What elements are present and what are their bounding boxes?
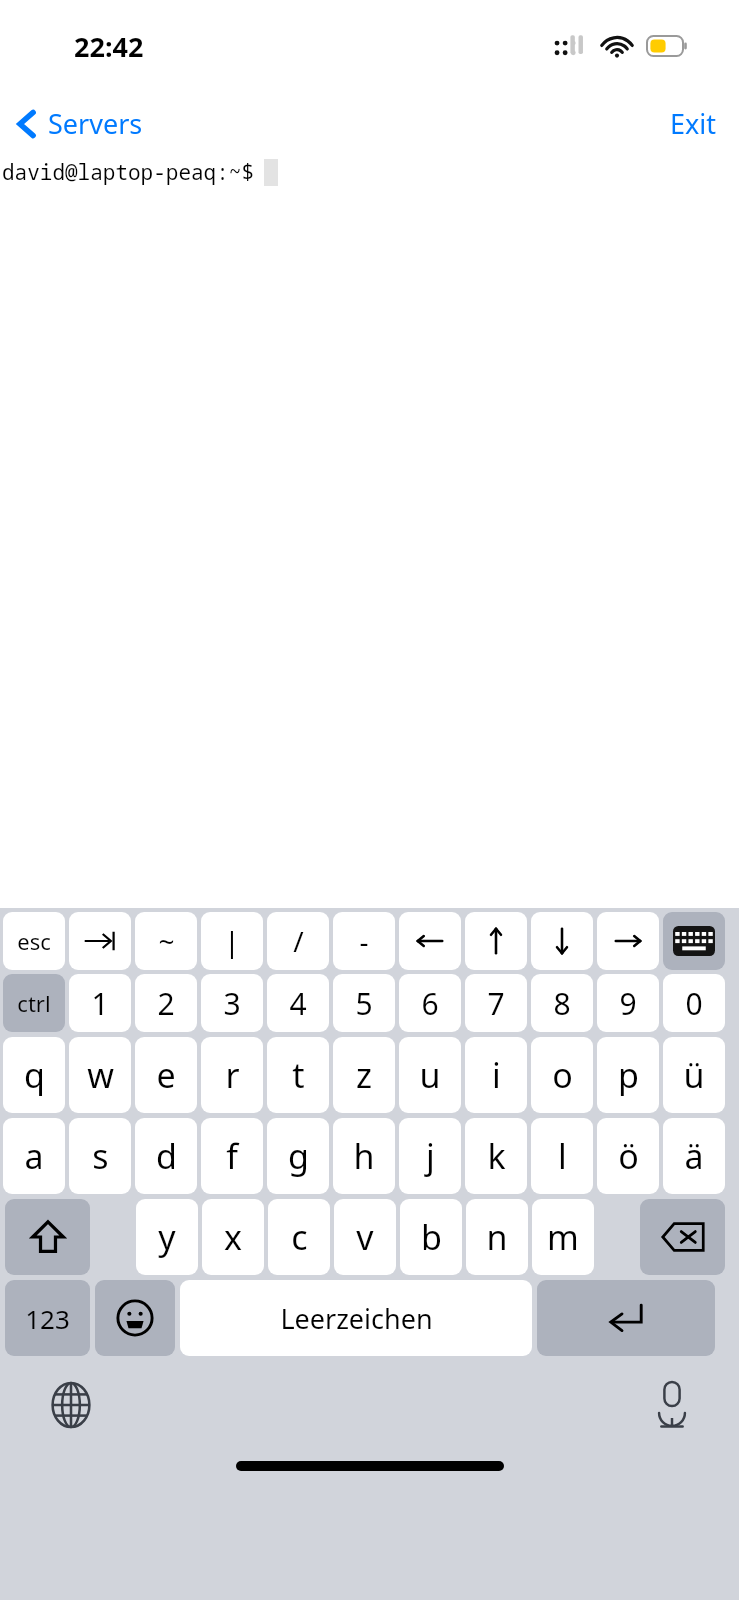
staticText: d [156,1133,177,1179]
button[interactable]: t [267,1037,329,1113]
staticText: ä [684,1133,704,1179]
button[interactable]: 8 [531,974,593,1032]
button[interactable]: esc [3,912,65,970]
button[interactable]: g [267,1118,329,1194]
staticText: z [356,1052,372,1098]
button[interactable]: j [399,1118,461,1194]
staticText: y [158,1214,176,1260]
button[interactable]: u [399,1037,461,1113]
button[interactable]: r [201,1037,263,1113]
button[interactable]: 6 [399,974,461,1032]
button[interactable]: s [69,1118,131,1194]
button[interactable]: m [532,1199,594,1275]
button[interactable]: c [268,1199,330,1275]
staticText: k [487,1133,506,1179]
button[interactable]: o [531,1037,593,1113]
button[interactable]: 3 [201,974,263,1032]
button[interactable]: f [201,1118,263,1194]
button[interactable]: Change keyboard [40,1373,102,1437]
button[interactable]: 2 [135,974,197,1032]
staticText: 2 [157,983,175,1024]
staticText: 5 [355,983,373,1024]
button[interactable]: d [135,1118,197,1194]
button[interactable]: Leerzeichen [180,1280,532,1356]
button[interactable]: Return [537,1280,715,1356]
button[interactable]: ü [663,1037,725,1113]
button[interactable]: ä [663,1118,725,1194]
staticText: / [293,922,304,960]
button[interactable]: Right [597,912,659,970]
staticText: u [419,1052,441,1098]
staticText: 7 [487,983,505,1024]
staticText: | [224,922,240,960]
button[interactable]: k [465,1118,527,1194]
button[interactable]: Tab [69,912,131,970]
staticText: 4 [289,983,307,1024]
button[interactable]: Left [399,912,461,970]
button[interactable]: Exit [648,97,739,150]
staticText: Exit [670,105,717,142]
button[interactable]: e [135,1037,197,1113]
button[interactable]: v [334,1199,396,1275]
button[interactable]: ctrl [3,974,65,1032]
button[interactable]: Dictation [645,1372,699,1438]
button[interactable]: - [333,912,395,970]
staticText: t [292,1052,305,1098]
button[interactable]: / [267,912,329,970]
button[interactable]: Backspace [640,1199,725,1275]
button[interactable]: n [466,1199,528,1275]
button[interactable]: ö [597,1118,659,1194]
button[interactable]: a [3,1118,65,1194]
staticText: esc [17,926,51,956]
button[interactable]: Emoji [95,1280,175,1356]
button[interactable]: h [333,1118,395,1194]
button[interactable]: x [202,1199,264,1275]
button[interactable]: q [3,1037,65,1113]
staticText: j [426,1133,435,1179]
staticText: ~ [158,922,175,960]
button[interactable]: b [400,1199,462,1275]
staticText: q [24,1052,45,1098]
button[interactable]: 7 [465,974,527,1032]
button[interactable]: Up [465,912,527,970]
staticText: n [486,1214,508,1260]
button[interactable]: 0 [663,974,725,1032]
staticText: s [92,1133,109,1179]
staticText: 6 [421,983,439,1024]
button[interactable]: Shift [5,1199,90,1275]
staticText: 9 [619,983,637,1024]
staticText: h [353,1133,375,1179]
button[interactable]: 123 [5,1280,90,1356]
staticText: b [421,1214,442,1260]
staticText: f [226,1133,238,1179]
staticText: 1 [91,983,109,1024]
button[interactable]: | [201,912,263,970]
button[interactable]: i [465,1037,527,1113]
button[interactable]: 5 [333,974,395,1032]
staticText: Servers [48,105,143,142]
button[interactable]: 9 [597,974,659,1032]
button[interactable]: w [69,1037,131,1113]
staticText: e [156,1052,176,1098]
button[interactable]: Down [531,912,593,970]
staticText: l [558,1133,567,1179]
staticText: 8 [553,983,571,1024]
button[interactable]: ~ [135,912,197,970]
button[interactable]: Servers [0,99,155,148]
staticText: p [618,1052,639,1098]
button[interactable]: z [333,1037,395,1113]
staticText: 3 [223,983,241,1024]
button[interactable]: 1 [69,974,131,1032]
staticText: c [291,1214,308,1260]
staticText: 0 [685,983,703,1024]
button[interactable]: Hide keyboard [663,912,725,970]
button[interactable]: p [597,1037,659,1113]
button[interactable]: y [136,1199,198,1275]
staticText: m [547,1214,579,1260]
staticText: r [225,1052,240,1098]
staticText: v [356,1214,374,1260]
staticText: - [359,922,369,960]
staticText: ctrl [17,988,51,1018]
button[interactable]: 4 [267,974,329,1032]
button[interactable]: l [531,1118,593,1194]
